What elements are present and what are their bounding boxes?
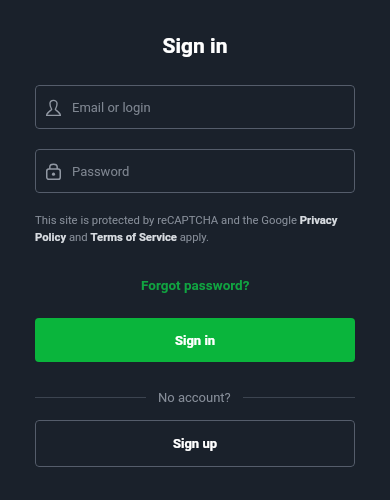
staticText: Sign up <box>173 436 217 451</box>
staticText: Email or login <box>72 100 151 115</box>
button[interactable]: Password <box>35 149 355 193</box>
staticText: Password <box>72 164 130 179</box>
button[interactable]: Email or login <box>35 85 355 129</box>
button[interactable]: Sign in <box>35 318 355 362</box>
staticText: This site is protected by reCAPTCHA and … <box>35 214 355 244</box>
staticText: No account? <box>158 390 231 405</box>
staticText: Sign in <box>35 34 355 59</box>
staticText: Sign in <box>175 333 216 348</box>
button[interactable]: Forgot password? <box>137 274 254 296</box>
button[interactable]: Sign up <box>35 420 355 467</box>
staticText: Forgot password? <box>141 277 250 293</box>
